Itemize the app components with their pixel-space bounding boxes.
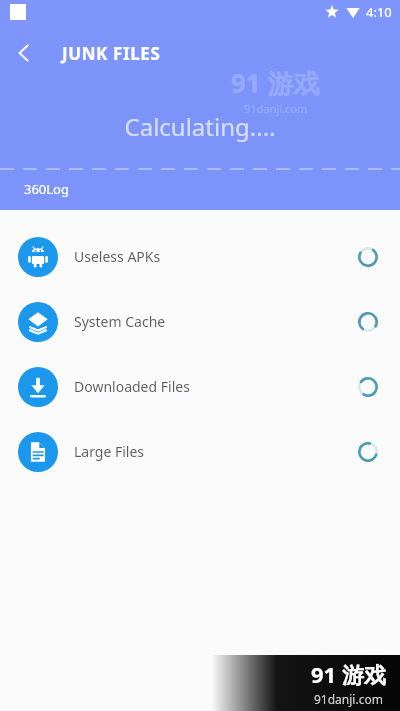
staticText: 91 游戏 (231, 65, 320, 101)
staticText: 91 游戏 (311, 659, 386, 689)
staticText: 4:10 (366, 3, 392, 21)
staticText: Large Files (74, 442, 145, 461)
staticText: Calculating.... (0, 110, 400, 143)
staticText: Useless APKs (74, 247, 161, 266)
button[interactable]: System Cache (0, 289, 400, 354)
staticText: Downloaded Files (74, 377, 190, 396)
staticText: System Cache (74, 312, 166, 331)
staticText: 360Log (24, 180, 69, 198)
staticText: 91danji.com (314, 691, 383, 707)
staticText: JUNK FILES (62, 42, 161, 65)
button[interactable]: Useless APKs (0, 224, 400, 289)
button[interactable]: Large Files (0, 419, 400, 484)
button[interactable]: Back (0, 29, 48, 77)
button[interactable]: Downloaded Files (0, 354, 400, 419)
staticText: 91danji.com (244, 101, 308, 116)
